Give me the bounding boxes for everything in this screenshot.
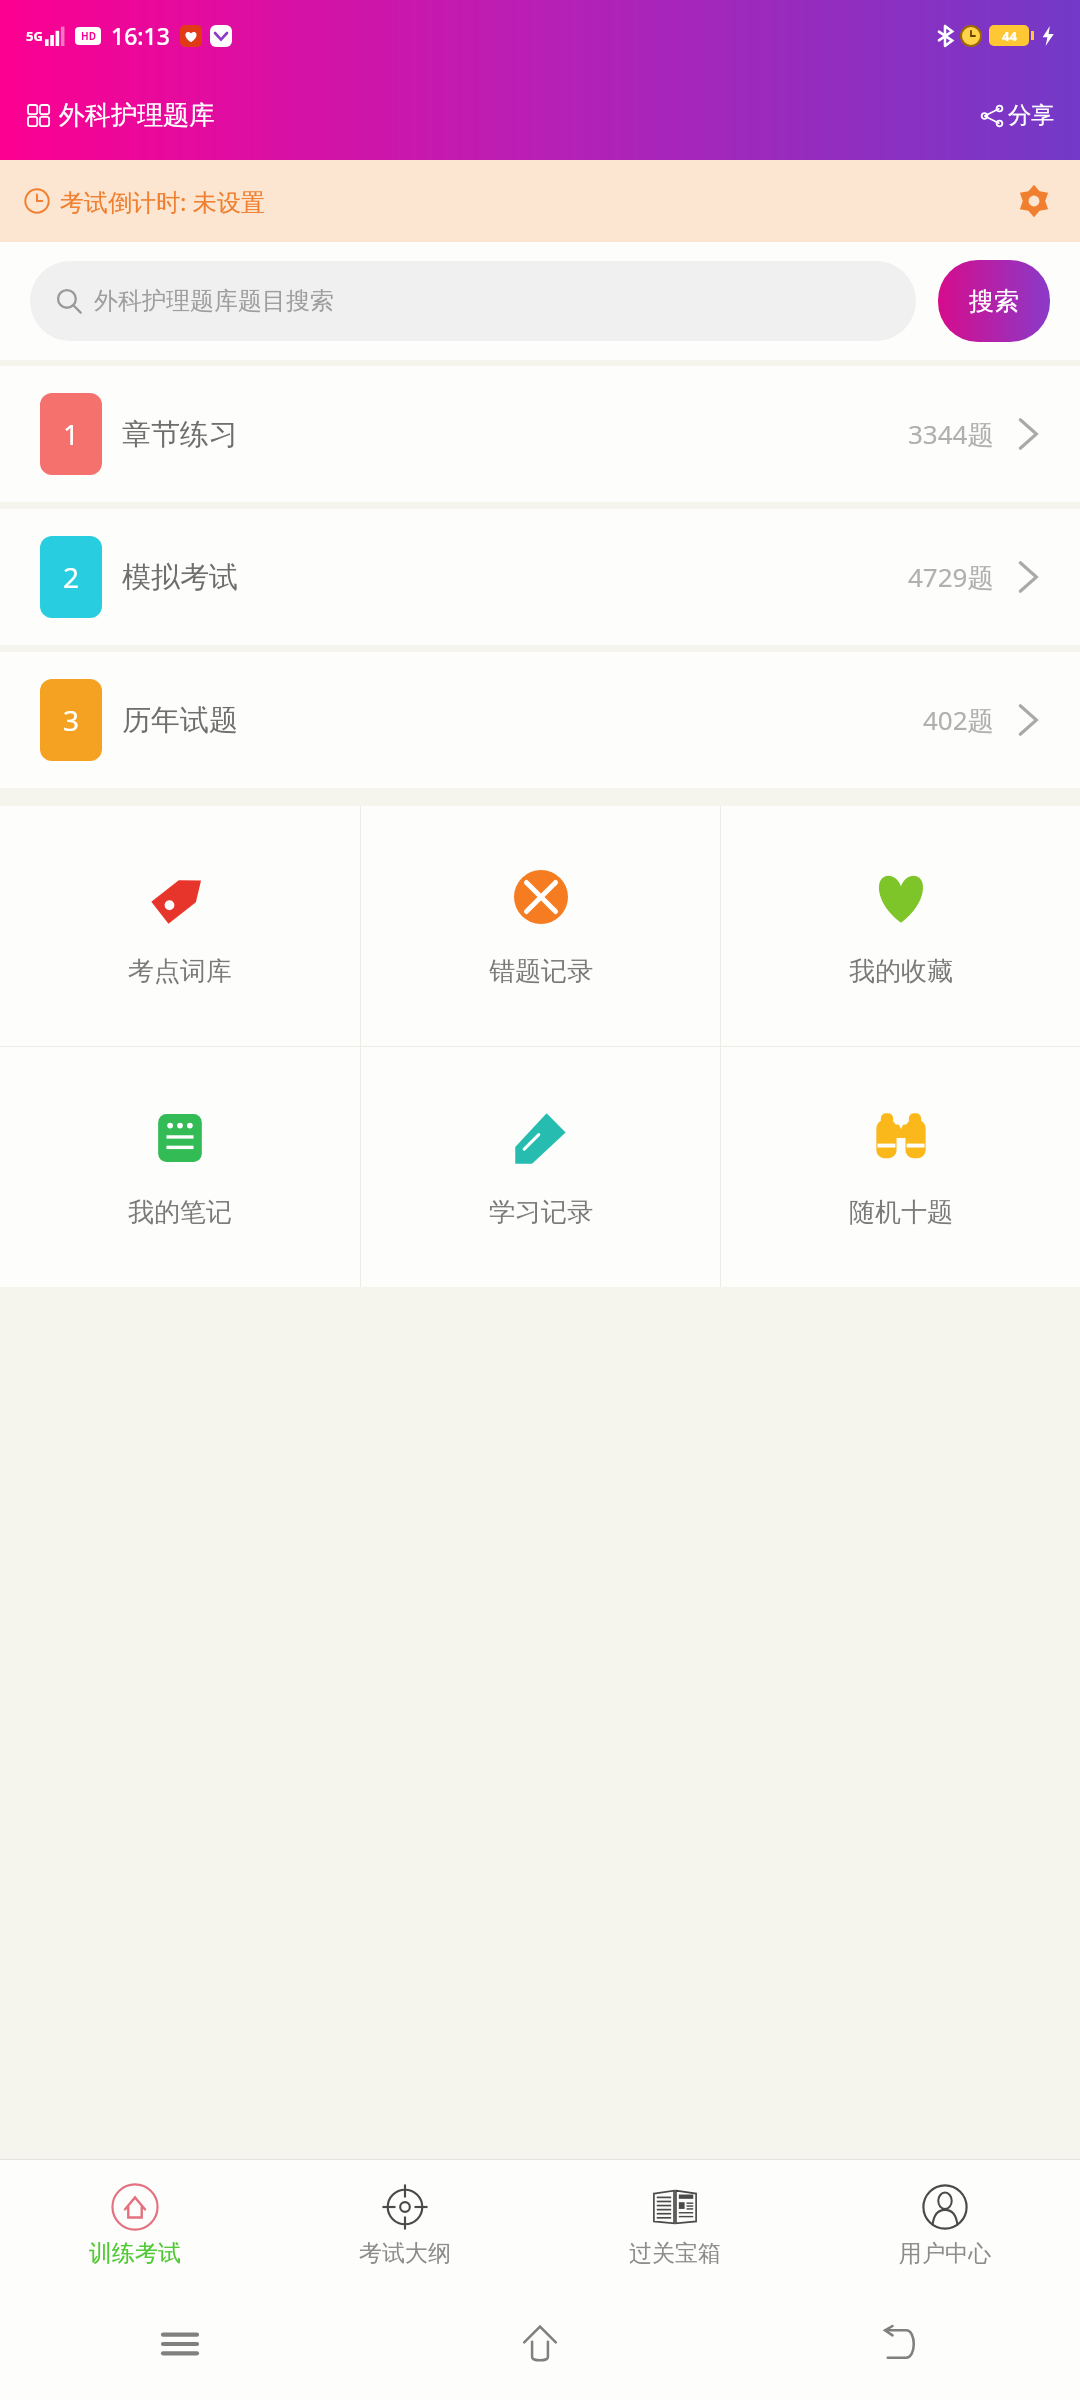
button[interactable]: 训练考试 <box>0 2160 270 2288</box>
button[interactable]: 用户中心 <box>810 2160 1080 2288</box>
staticText: 错题记录 <box>489 955 593 988</box>
button[interactable]: 错题记录 <box>361 806 720 1046</box>
button[interactable]: Back <box>720 2288 1080 2400</box>
staticText: HD <box>81 29 96 43</box>
staticText: 历年试题 <box>122 702 238 739</box>
staticText: 3 <box>63 701 80 739</box>
button[interactable]: 学习记录 <box>361 1047 720 1287</box>
staticText: 章节练习 <box>122 416 238 453</box>
button[interactable]: Home <box>360 2288 720 2400</box>
staticText: 我的收藏 <box>849 955 953 988</box>
staticText: 模拟考试 <box>122 559 238 596</box>
staticText: 外科护理题库 <box>59 99 215 132</box>
button[interactable]: 3 <box>0 652 1080 788</box>
button[interactable]: 考试倒计时: 未设置 <box>0 160 1080 242</box>
staticText: 分享 <box>1008 101 1054 130</box>
button[interactable]: 考点词库 <box>0 806 360 1046</box>
staticText: 1 <box>63 415 80 453</box>
button[interactable]: 分享 <box>955 87 1080 144</box>
staticText: 搜索 <box>969 286 1019 317</box>
button[interactable]: 1 <box>0 366 1080 502</box>
button[interactable]: 考试大纲 <box>270 2160 540 2288</box>
staticText: 16:13 <box>111 20 170 51</box>
staticText: 过关宝箱 <box>629 2239 721 2268</box>
staticText: 外科护理题库题目搜索 <box>94 286 334 316</box>
staticText: 考点词库 <box>128 955 232 988</box>
staticText: 我的笔记 <box>128 1196 232 1229</box>
staticText: 考试倒计时: 未设置 <box>60 185 265 218</box>
staticText: 4729题 <box>908 559 994 595</box>
staticText: 5G <box>26 27 43 45</box>
button[interactable]: 搜索 <box>938 260 1050 342</box>
staticText: 学习记录 <box>489 1196 593 1229</box>
button[interactable]: Recents <box>0 2288 360 2400</box>
staticText: 2 <box>63 558 80 596</box>
staticText: 训练考试 <box>89 2239 181 2268</box>
staticText: 考试大纲 <box>359 2239 451 2268</box>
button[interactable]: 随机十题 <box>721 1047 1080 1287</box>
button[interactable]: 外科护理题库题目搜索 <box>30 261 916 341</box>
button[interactable]: 设置 <box>1012 179 1056 223</box>
button[interactable]: 我的收藏 <box>721 806 1080 1046</box>
staticText: 3344题 <box>908 416 994 452</box>
staticText: 402题 <box>923 702 994 738</box>
button[interactable]: 2 <box>0 509 1080 645</box>
staticText: 随机十题 <box>849 1196 953 1229</box>
staticText: 44 <box>1002 27 1017 45</box>
staticText: 用户中心 <box>899 2239 991 2268</box>
button[interactable]: 过关宝箱 <box>540 2160 810 2288</box>
button[interactable]: 我的笔记 <box>0 1047 360 1287</box>
